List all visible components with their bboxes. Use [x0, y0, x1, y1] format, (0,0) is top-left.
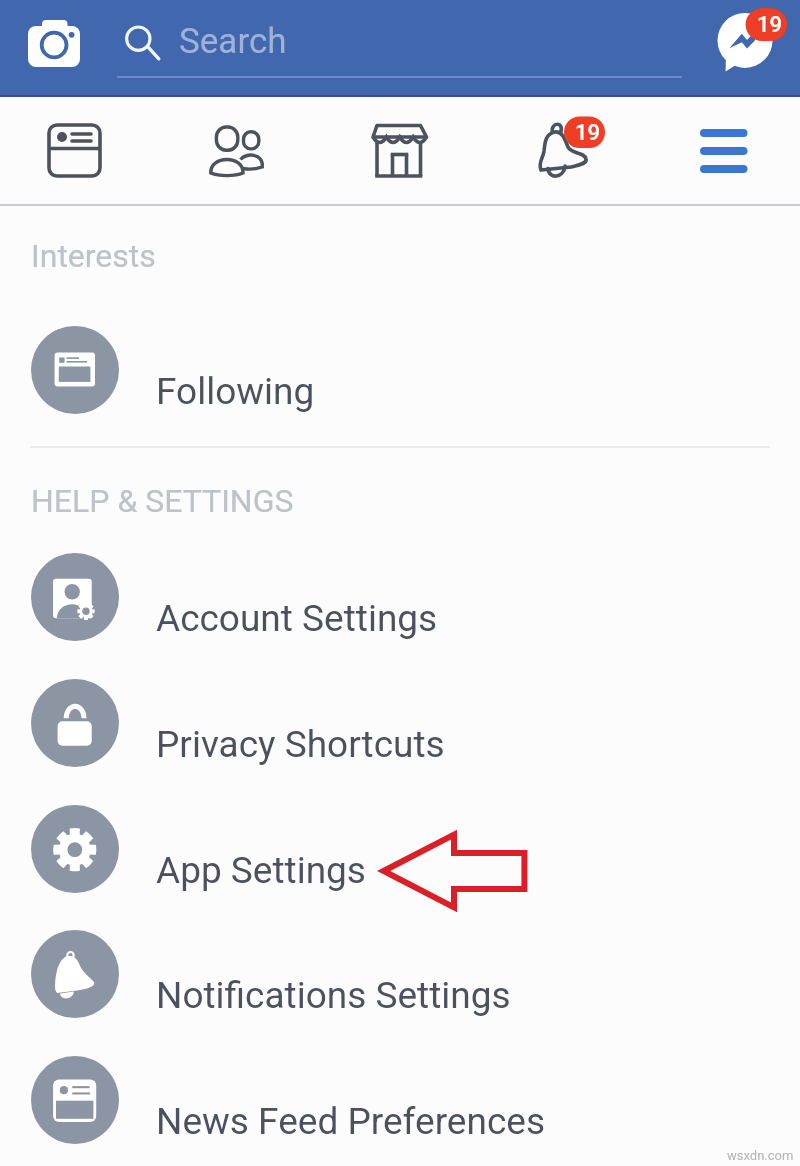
button[interactable]: Marketplace — [359, 97, 439, 204]
staticText: App Settings — [156, 849, 366, 892]
staticText: 19 — [757, 12, 783, 38]
staticText: Search — [179, 21, 287, 62]
button[interactable]: Messenger — [706, 6, 792, 76]
button[interactable] — [0, 911, 800, 1037]
staticText: News Feed Preferences — [156, 1100, 545, 1143]
staticText: wsxdn.com — [727, 1148, 794, 1163]
button[interactable] — [0, 1037, 800, 1163]
button[interactable]: Friends — [197, 97, 277, 204]
staticText: Privacy Shortcuts — [156, 723, 445, 766]
staticText: HELP & SETTINGS — [31, 482, 294, 520]
staticText: 19 — [575, 120, 601, 146]
button[interactable] — [0, 534, 800, 660]
button[interactable] — [0, 786, 800, 912]
button[interactable] — [0, 660, 800, 786]
staticText: Account Settings — [156, 597, 438, 640]
button[interactable]: Menu — [683, 97, 763, 204]
staticText: Interests — [31, 237, 156, 275]
button[interactable]: Notifications — [521, 97, 601, 204]
button[interactable] — [0, 307, 800, 433]
other: Search — [120, 20, 164, 64]
staticText: Notifications Settings — [156, 974, 511, 1017]
button[interactable]: Camera — [18, 14, 90, 78]
button[interactable]: News Feed — [35, 97, 115, 204]
staticText: Following — [156, 370, 315, 413]
